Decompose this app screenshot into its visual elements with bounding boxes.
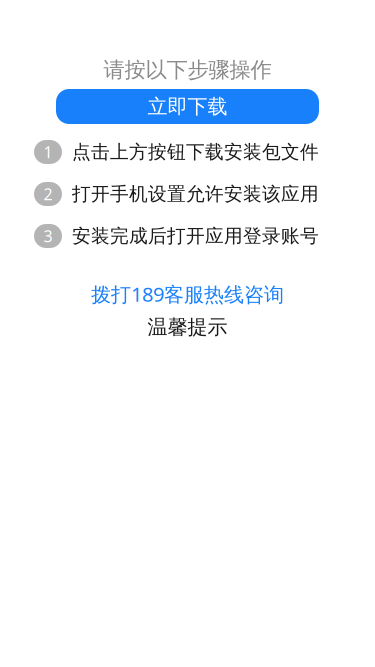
staticText: 1 — [43, 141, 52, 163]
button[interactable]: 拨打189客服热线咨询 — [0, 284, 375, 304]
staticText: 3 — [43, 225, 52, 247]
staticText: 请按以下步骤操作 — [103, 57, 271, 83]
staticText: 2 — [43, 183, 52, 205]
staticText: 温馨提示 — [147, 315, 227, 339]
staticText: 打开手机设置允许安装该应用 — [72, 182, 319, 205]
staticText: 安装完成后打开应用登录账号 — [72, 224, 319, 247]
staticText: 拨打189客服热线咨询 — [91, 281, 284, 307]
staticText: 点击上方按钮下载安装包文件 — [72, 140, 319, 163]
staticText: 立即下载 — [147, 94, 227, 119]
button[interactable]: 立即下载 — [56, 89, 319, 124]
